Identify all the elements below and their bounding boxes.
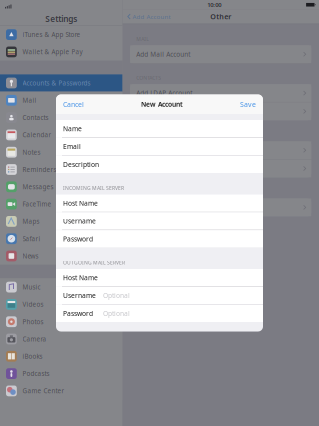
staticText: OUTGOING MAIL SERVER [63, 259, 125, 266]
button[interactable]: Host Name [56, 194, 263, 212]
staticText: Podcasts [22, 369, 49, 378]
staticText: MAIL [136, 36, 149, 42]
button[interactable]: Add macOS Server Account [130, 198, 311, 216]
staticText: Calendar [22, 131, 51, 139]
staticText: INCOMING MAIL SERVER [63, 185, 124, 191]
button[interactable]: Email [56, 138, 263, 155]
button[interactable]: Safari [0, 230, 123, 247]
button[interactable]: Username [56, 212, 263, 230]
staticText: CONTACTS [136, 74, 161, 81]
button[interactable]: Description [56, 156, 263, 173]
button[interactable]: Cancel [56, 94, 84, 114]
button[interactable]: Name [56, 120, 263, 137]
staticText: CALENDARS [136, 132, 165, 138]
button[interactable]: Add LDAP Account [130, 84, 311, 102]
button[interactable]: FaceTime [0, 195, 123, 213]
staticText: FaceTime [22, 200, 51, 208]
staticText: Wallet & Apple Pay [22, 48, 82, 56]
button[interactable]: Add CalDAV Account [130, 141, 311, 159]
staticText: Reminders [22, 165, 56, 174]
staticText: Add macOS Server Account [136, 203, 221, 212]
staticText: New Account [141, 100, 183, 109]
staticText: Safari [22, 234, 40, 243]
staticText: 10:00 [207, 1, 221, 9]
button[interactable]: Password [56, 305, 263, 322]
button[interactable]: Add Account [123, 9, 170, 24]
staticText: Add CardDAV Account [136, 107, 204, 116]
staticText: Music [22, 283, 40, 291]
staticText: Camera [22, 335, 46, 343]
staticText: Add LDAP Account [136, 89, 192, 97]
staticText: Messages [22, 183, 53, 191]
button[interactable]: Add CardDAV Account [130, 102, 311, 120]
button[interactable]: Notes [0, 143, 123, 161]
staticText: Add Account [132, 12, 170, 21]
button[interactable]: Videos [0, 296, 123, 313]
button[interactable]: iBooks [0, 348, 123, 365]
staticText: Optional [103, 291, 130, 300]
button[interactable]: Wallet & Apple Pay [0, 43, 123, 60]
staticText: Cancel [63, 100, 84, 109]
button[interactable]: Game Center [0, 382, 123, 400]
staticText: Optional [103, 309, 130, 318]
staticText: Other [210, 12, 231, 21]
staticText: Contacts [22, 113, 48, 122]
button[interactable]: Camera [0, 330, 123, 348]
staticText: Add Mail Account [136, 50, 190, 58]
button[interactable]: iTunes & App Store [0, 26, 123, 43]
staticText: Password [63, 309, 93, 318]
staticText: Settings [45, 13, 77, 24]
staticText: Accounts & Passwords [22, 79, 90, 87]
button[interactable]: Maps [0, 213, 123, 230]
button[interactable]: Contacts [0, 109, 123, 126]
staticText: Save [240, 100, 256, 109]
staticText: iBooks [22, 352, 42, 360]
staticText: Description [63, 160, 99, 169]
staticText: Username [63, 217, 96, 225]
staticText: Photos [22, 317, 43, 326]
staticText: Game Center [22, 387, 64, 395]
staticText: SERVERS [136, 189, 157, 195]
staticText: Maps [22, 217, 39, 225]
button[interactable]: Reminders [0, 161, 123, 178]
button[interactable]: Add Subscribed Calendar [130, 160, 311, 177]
staticText: Videos [22, 300, 43, 308]
staticText: Password [63, 234, 93, 243]
staticText: Email [63, 142, 81, 151]
button[interactable]: Music [0, 278, 123, 296]
staticText: Name [63, 124, 82, 133]
staticText: Username [63, 291, 96, 300]
button[interactable]: Photos [0, 313, 123, 330]
button[interactable]: Save [240, 94, 263, 114]
button[interactable]: Username [56, 287, 263, 304]
button[interactable]: News [0, 247, 123, 265]
button[interactable]: Messages [0, 178, 123, 195]
button[interactable]: Host Name [56, 269, 263, 286]
staticText: Host Name [63, 273, 98, 282]
staticText: Host Name [63, 199, 98, 208]
staticText: Mail [22, 96, 36, 104]
button[interactable]: Add Mail Account [130, 45, 311, 63]
staticText: News [22, 252, 38, 260]
button[interactable]: Accounts & Passwords [0, 74, 123, 92]
staticText: iTunes & App Store [22, 30, 80, 39]
button[interactable]: Mail [0, 92, 123, 109]
button[interactable]: Podcasts [0, 365, 123, 382]
button[interactable]: Calendar [0, 126, 123, 143]
button[interactable]: Password [56, 230, 263, 247]
staticText: Notes [22, 148, 40, 156]
